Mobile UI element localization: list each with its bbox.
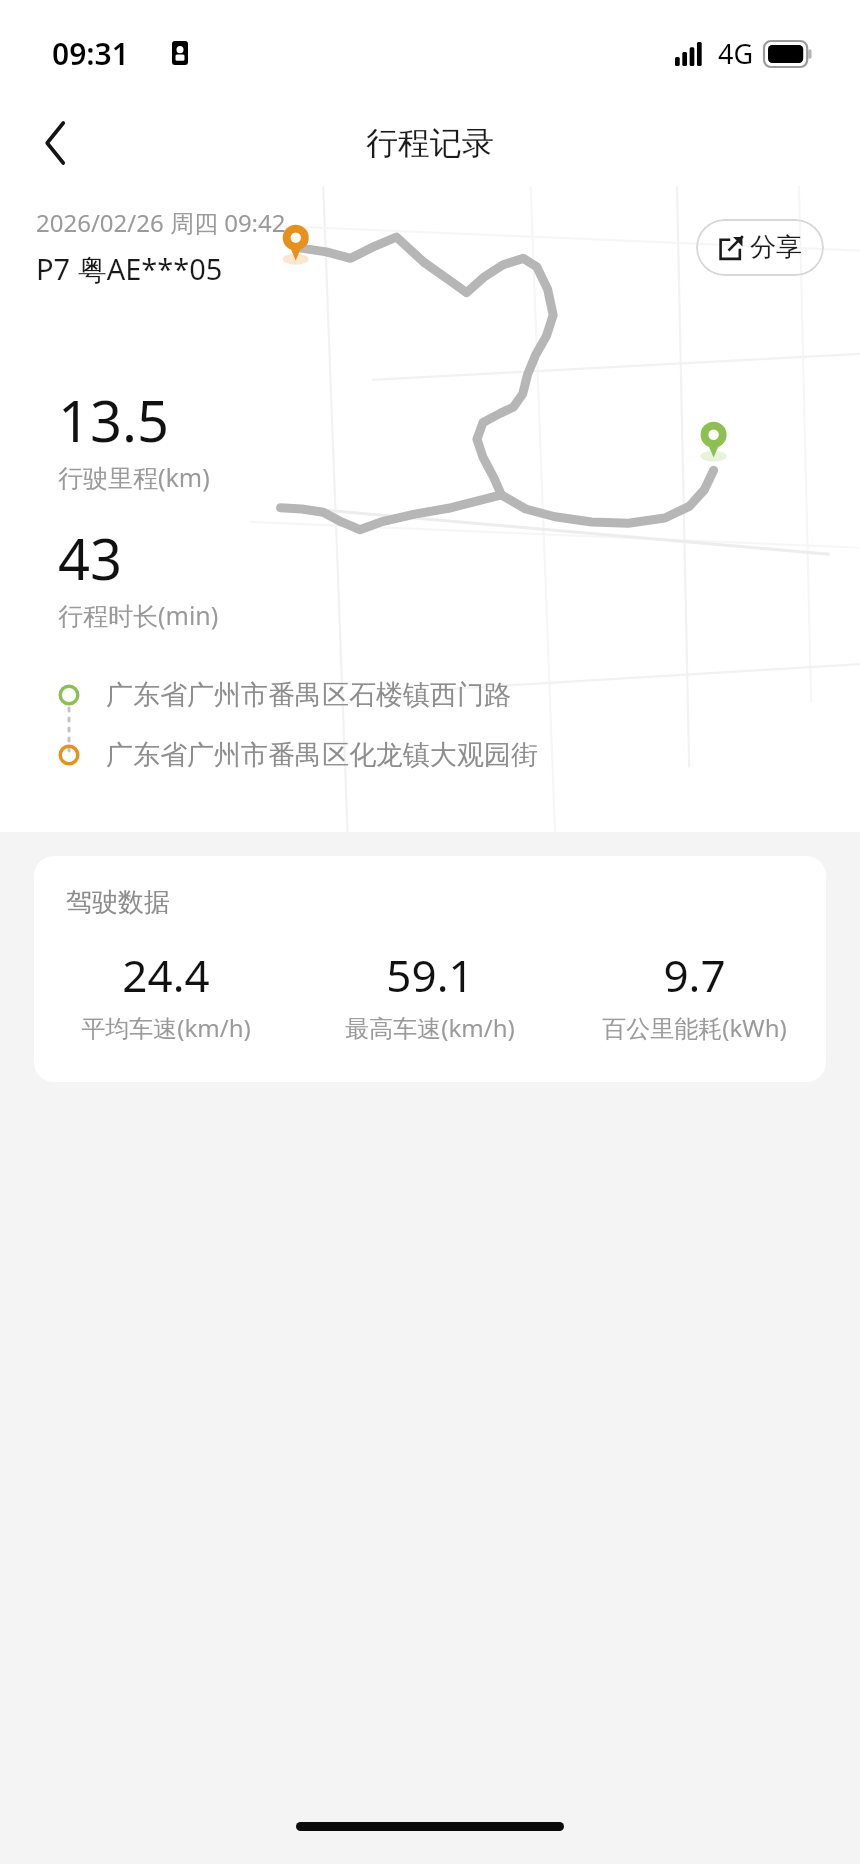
button[interactable]: 驾驶数据	[34, 856, 826, 1082]
staticText: 广东省广州市番禺区石楼镇西门路	[106, 678, 511, 712]
staticText: 百公里能耗(kWh)	[602, 1011, 787, 1044]
staticText: 广东省广州市番禺区化龙镇大观园街	[106, 738, 538, 772]
staticText: 分享	[750, 231, 802, 264]
staticText: 24.4	[122, 945, 210, 1005]
staticText: 09:31	[52, 33, 129, 74]
staticText: 驾驶数据	[66, 886, 170, 919]
button[interactable]: 分享	[696, 219, 824, 276]
staticText: 平均车速(km/h)	[81, 1011, 251, 1044]
staticText: P7 粤AE***05	[36, 249, 223, 289]
staticText: 43	[58, 520, 123, 596]
staticText: 行程记录	[366, 123, 494, 163]
staticText: 最高车速(km/h)	[345, 1011, 515, 1044]
staticText: 行程时长(min)	[58, 598, 219, 632]
staticText: 行驶里程(km)	[58, 460, 210, 494]
staticText: 9.7	[663, 945, 726, 1005]
staticText: 13.5	[58, 382, 170, 458]
staticText: 2026/02/26 周四 09:42	[36, 206, 286, 239]
button[interactable]: Back	[24, 111, 88, 175]
staticText: 59.1	[386, 945, 474, 1005]
staticText: 4G	[718, 35, 754, 72]
